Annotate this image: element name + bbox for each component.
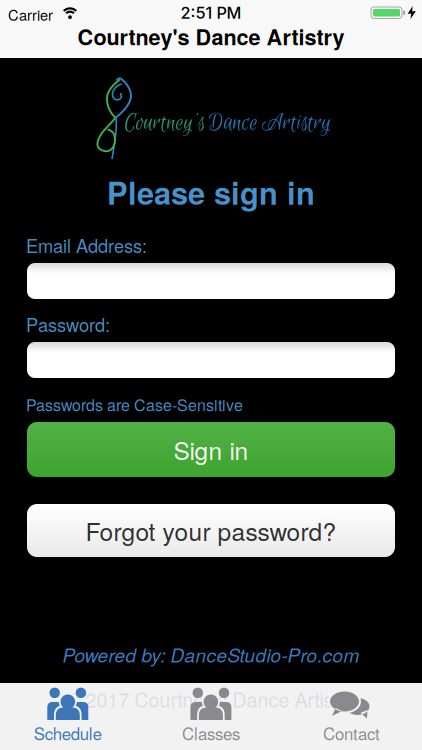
button[interactable]: Forgot your password? — [27, 504, 395, 557]
staticText: Courtney's Dance Artistry — [77, 21, 344, 52]
staticText: Password: — [26, 311, 110, 337]
staticText: Passwords are Case-Sensitive — [26, 393, 243, 416]
button[interactable] — [27, 263, 395, 299]
staticText: Artistry — [262, 109, 331, 137]
button[interactable]: Contact — [281, 684, 422, 746]
staticText: Courtney's — [124, 109, 205, 137]
staticText: Dance — [209, 109, 258, 137]
staticText: Please sign in — [107, 170, 315, 214]
button[interactable]: Powered by: DanceStudio-Pro.com — [0, 641, 422, 668]
button[interactable]: Schedule — [0, 684, 138, 746]
staticText: © 2017 Courtney's Dance Artistry — [66, 685, 355, 713]
staticText: Schedule — [34, 721, 102, 745]
staticText: Powered by: DanceStudio-Pro.com — [62, 641, 359, 668]
staticText: Classes — [182, 721, 240, 745]
button[interactable] — [27, 342, 395, 378]
staticText: Carrier — [8, 4, 53, 25]
button[interactable]: Classes — [141, 684, 281, 746]
staticText: Contact — [323, 721, 380, 745]
staticText: Email Address: — [26, 232, 147, 258]
button[interactable]: Sign in — [27, 422, 395, 477]
staticText: Forgot your password? — [85, 513, 336, 548]
staticText: Sign in — [173, 432, 248, 467]
staticText: 2:51 PM — [180, 3, 241, 23]
